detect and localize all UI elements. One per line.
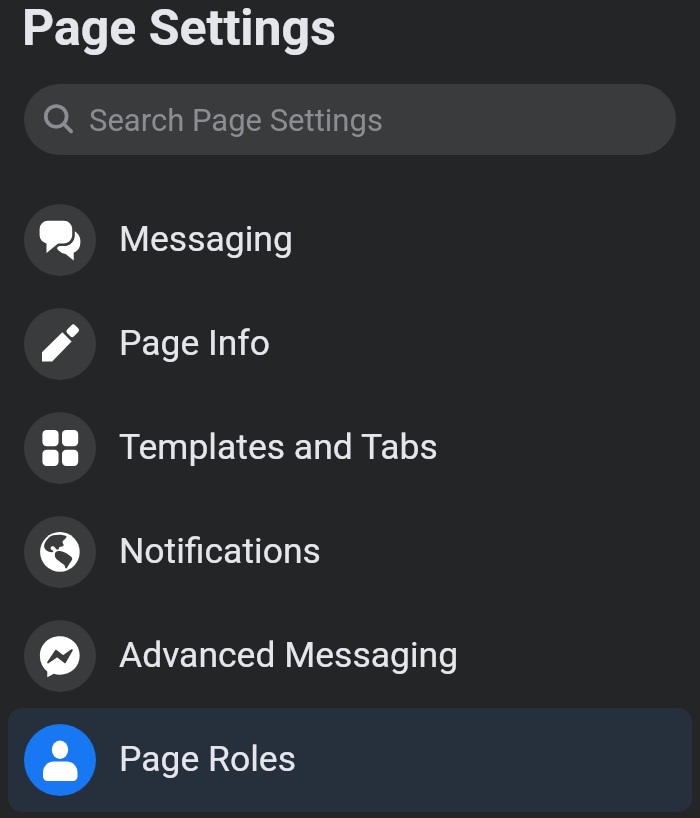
staticText: Page Info — [119, 322, 270, 364]
button[interactable]: Page Info — [8, 292, 692, 396]
staticText: Page Settings — [22, 0, 336, 58]
staticText: Page Roles — [119, 738, 296, 780]
button[interactable]: Page Roles — [8, 708, 692, 812]
button[interactable]: Notifications — [8, 500, 692, 604]
button[interactable]: Templates and Tabs — [8, 396, 692, 500]
staticText: Templates and Tabs — [119, 426, 438, 468]
staticText: Search Page Settings — [89, 102, 383, 138]
staticText: Notifications — [119, 530, 321, 572]
staticText: Advanced Messaging — [119, 634, 459, 676]
button[interactable]: Advanced Messaging — [8, 604, 692, 708]
staticText: Messaging — [119, 218, 293, 260]
button[interactable]: Search Page Settings — [24, 84, 676, 155]
button[interactable]: Messaging — [8, 188, 692, 292]
